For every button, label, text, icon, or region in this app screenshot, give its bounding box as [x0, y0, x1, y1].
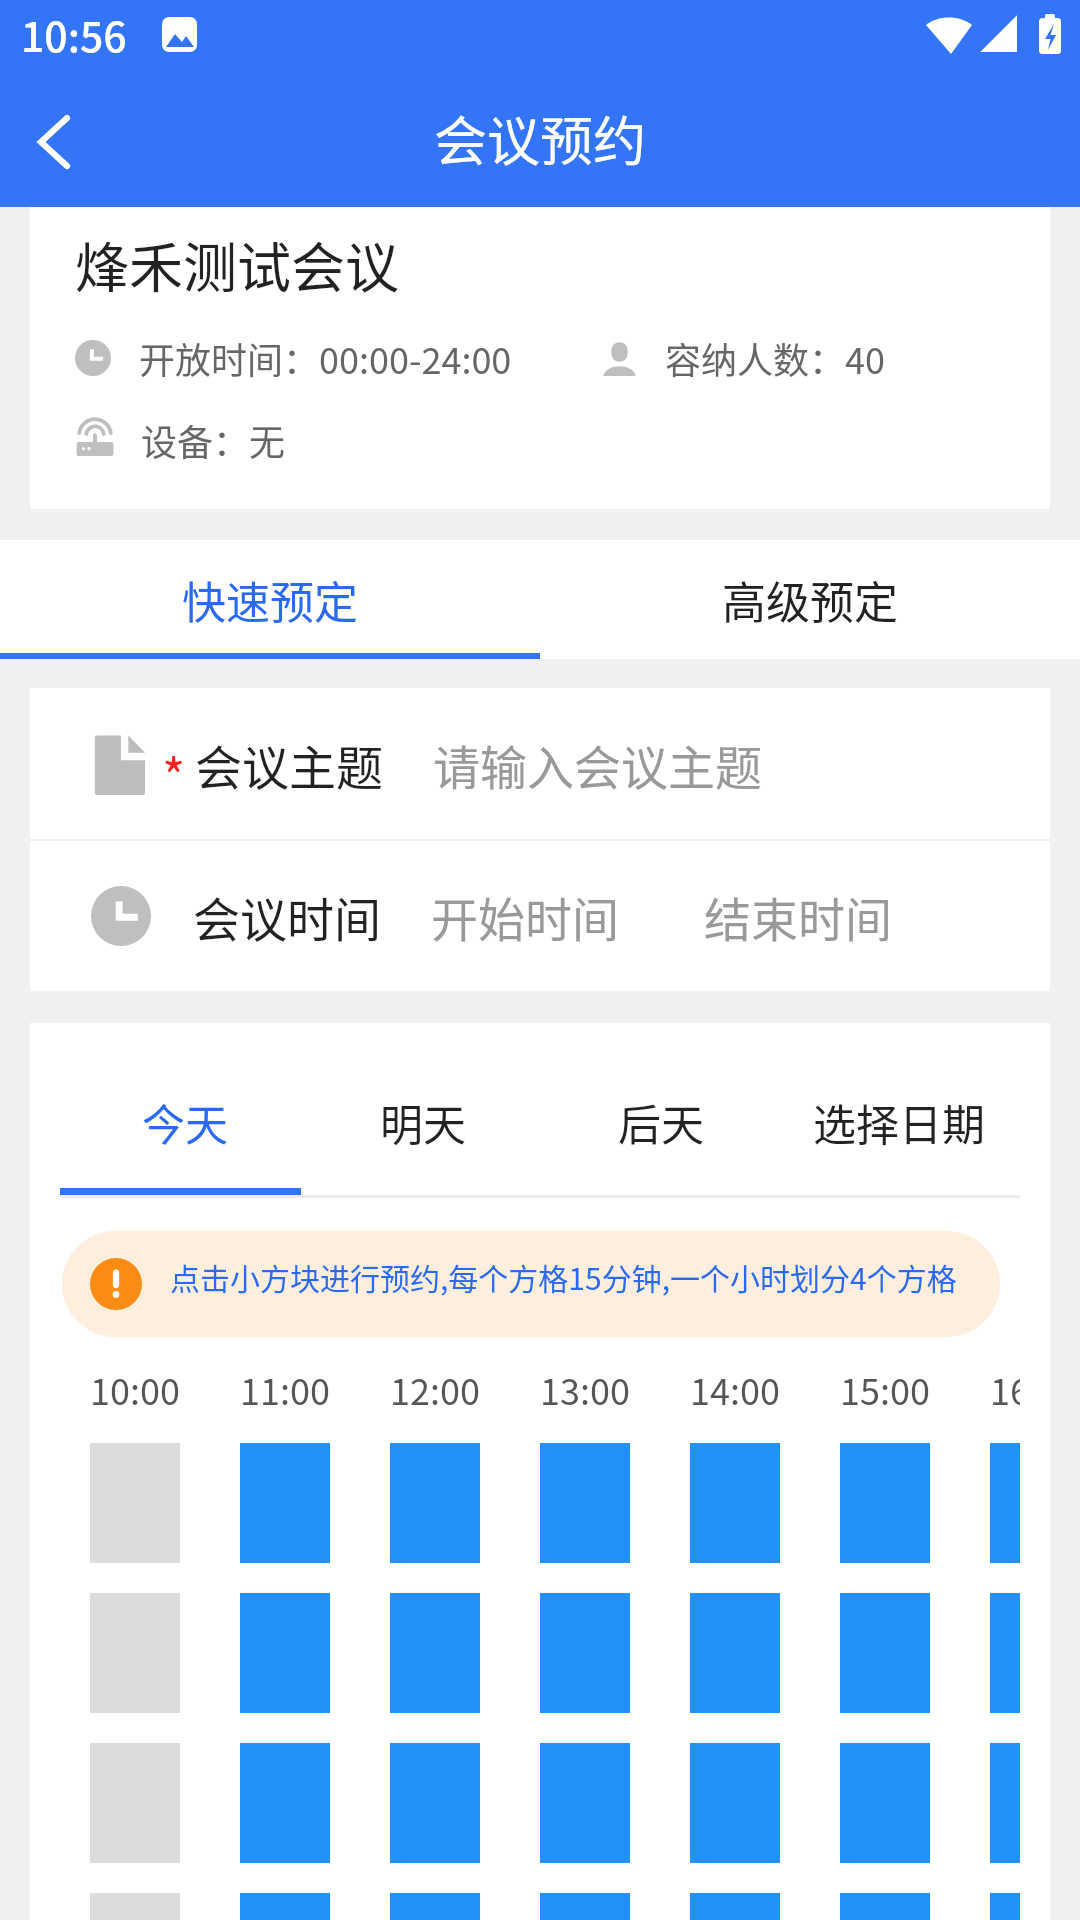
staticText: 会议主题 [195, 730, 383, 798]
staticText: 选择日期 [813, 1091, 985, 1153]
button[interactable]: * [30, 688, 1050, 839]
staticText: 13:00 [540, 1363, 630, 1415]
staticText: 烽禾测试会议 [75, 225, 399, 303]
staticText: 后天 [618, 1091, 704, 1153]
staticText: 16:00 [990, 1363, 1020, 1415]
staticText: 12:00 [390, 1363, 480, 1415]
staticText: 10:56 [21, 4, 127, 63]
staticText: 开放时间：00:00-24:00 [139, 332, 512, 384]
staticText: 会议预约 [434, 100, 646, 177]
staticText: 开始时间 [431, 882, 619, 950]
staticText: 会议时间 [193, 882, 381, 950]
staticText: 请输入会议主题 [433, 730, 762, 798]
staticText: 11:00 [240, 1363, 330, 1415]
button[interactable]: 后天 [541, 1023, 780, 1197]
button[interactable]: 会议时间 [30, 841, 1050, 991]
staticText: 高级预定 [722, 568, 898, 632]
button[interactable]: 今天 [65, 1023, 304, 1197]
button[interactable]: Back [0, 88, 110, 198]
button[interactable]: 高级预定 [540, 540, 1080, 659]
button[interactable]: 选择日期 [779, 1023, 1018, 1197]
staticText: * [162, 738, 186, 810]
staticText: 设备：无 [141, 414, 286, 466]
staticText: 明天 [380, 1091, 466, 1153]
staticText: 点击小方块进行预约,每个方格15分钟,一个小时划分4个方格 [170, 1255, 957, 1298]
staticText: 14:00 [690, 1363, 780, 1415]
staticText: 今天 [142, 1091, 228, 1153]
staticText: 快速预定 [182, 568, 358, 632]
staticText: 结束时间 [704, 882, 892, 950]
staticText: 10:00 [90, 1363, 180, 1415]
staticText: 15:00 [840, 1363, 930, 1415]
staticText: 容纳人数：40 [665, 332, 885, 384]
button[interactable]: 明天 [303, 1023, 542, 1197]
button[interactable]: 快速预定 [0, 540, 540, 659]
